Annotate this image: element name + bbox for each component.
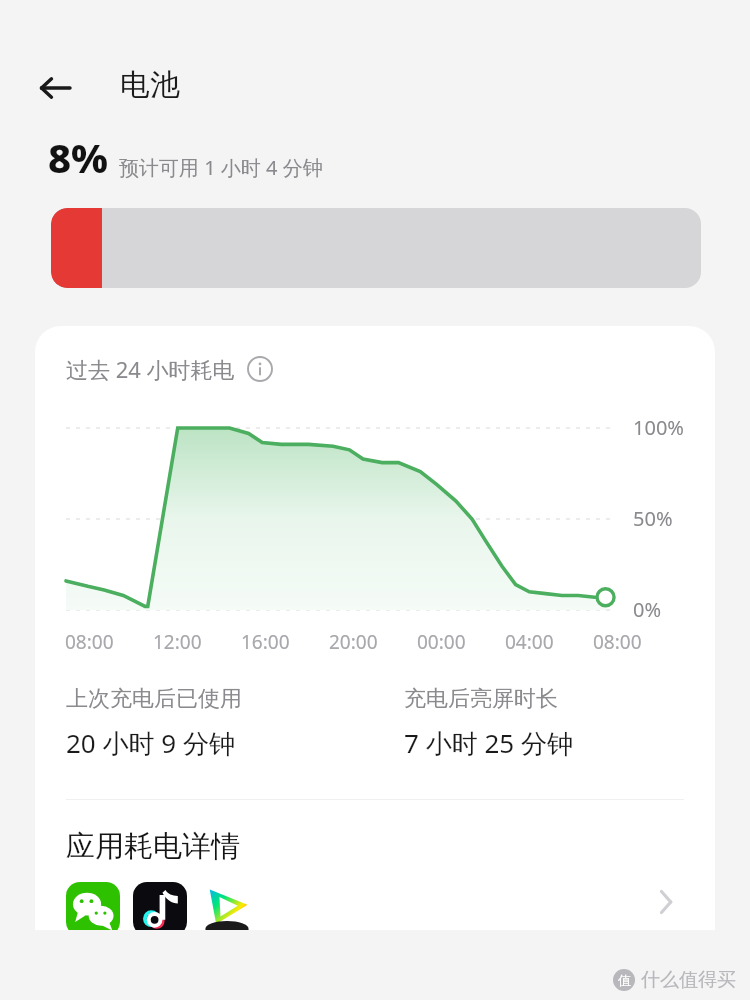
staticText: 电池 <box>120 66 180 104</box>
staticText: 值 <box>618 972 631 988</box>
staticText: 100% <box>633 414 684 441</box>
staticText: 12:00 <box>153 629 202 655</box>
staticText: 16:00 <box>241 629 290 655</box>
staticText: 过去 24 小时耗电 <box>66 354 235 384</box>
staticText: 20:00 <box>329 629 378 655</box>
staticText: 什么值得买 <box>641 968 736 992</box>
staticText: 00:00 <box>417 629 466 655</box>
staticText: 8% <box>48 130 109 184</box>
button[interactable]: Info <box>246 355 274 383</box>
staticText: 上次充电后已使用 <box>66 685 242 713</box>
staticText: 预计可用 1 小时 4 分钟 <box>119 154 323 181</box>
staticText: 08:00 <box>593 629 642 655</box>
staticText: 0% <box>633 596 662 623</box>
staticText: 04:00 <box>505 629 554 655</box>
staticText: 20 小时 9 分钟 <box>66 725 235 761</box>
staticText: 50% <box>633 505 673 532</box>
staticText: 7 小时 25 分钟 <box>404 725 573 761</box>
staticText: 08:00 <box>65 629 114 655</box>
button[interactable]: Back <box>30 63 80 113</box>
staticText: 充电后亮屏时长 <box>404 685 558 713</box>
staticText: 应用耗电详情 <box>66 828 240 865</box>
button[interactable]: 应用耗电详情 <box>35 800 715 930</box>
other: Open app battery details <box>643 880 687 924</box>
